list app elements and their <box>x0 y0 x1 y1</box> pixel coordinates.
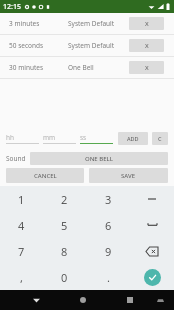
staticText: C <box>158 135 162 142</box>
button[interactable]: Dash <box>130 186 174 212</box>
button[interactable]: X <box>129 61 164 74</box>
staticText: 2 <box>61 192 68 207</box>
button[interactable]: 7 <box>0 238 43 264</box>
button[interactable]: SAVE <box>89 168 168 183</box>
staticText: 50 seconds <box>9 41 44 50</box>
button[interactable]: ADD <box>118 132 148 145</box>
button[interactable]: Back <box>25 290 47 310</box>
staticText: ADD <box>127 135 139 142</box>
button[interactable]: 4 <box>0 212 43 238</box>
staticText: 30 minutes <box>9 63 44 72</box>
staticText: , <box>20 270 23 285</box>
button[interactable]: Recent apps <box>119 290 141 310</box>
button[interactable]: 6 <box>86 212 130 238</box>
staticText: 8 <box>61 244 68 259</box>
staticText: X <box>145 64 149 72</box>
button[interactable]: CANCEL <box>6 168 84 183</box>
button[interactable]: 8 <box>43 238 86 264</box>
staticText: 3 minutes <box>9 19 40 28</box>
button[interactable]: 5 <box>43 212 86 238</box>
button[interactable]: Done <box>130 264 174 290</box>
button[interactable]: 3 minutes <box>0 13 174 34</box>
staticText: 5 <box>61 218 68 233</box>
staticText: ONE BELL <box>85 155 113 163</box>
button[interactable]: ONE BELL <box>30 152 168 165</box>
staticText: CANCEL <box>34 172 57 180</box>
staticText: mm <box>43 133 56 142</box>
staticText: 12:15 <box>3 2 21 12</box>
staticText: 3 <box>105 192 112 207</box>
button[interactable]: Backspace <box>130 238 174 264</box>
staticText: 6 <box>105 218 112 233</box>
staticText: ss <box>80 133 87 142</box>
button[interactable]: mm <box>43 132 76 144</box>
button[interactable]: 2 <box>43 186 86 212</box>
button[interactable]: 9 <box>86 238 130 264</box>
staticText: System Default <box>68 41 115 50</box>
button[interactable]: hh <box>6 132 39 144</box>
button[interactable]: 0 <box>43 264 86 290</box>
staticText: hh <box>6 133 15 142</box>
button[interactable]: ss <box>80 132 113 144</box>
staticText: 7 <box>18 244 25 259</box>
button[interactable]: 50 seconds <box>0 35 174 56</box>
button[interactable]: C <box>152 132 168 145</box>
staticText: 0 <box>61 270 68 285</box>
staticText: SAVE <box>121 172 136 180</box>
staticText: . <box>107 270 110 285</box>
button[interactable]: Keyboard <box>151 291 169 309</box>
staticText: X <box>145 42 149 50</box>
staticText: System Default <box>68 19 115 28</box>
button[interactable]: . <box>86 264 130 290</box>
staticText: One Bell <box>68 63 94 72</box>
button[interactable]: 30 minutes <box>0 57 174 78</box>
button[interactable]: 1 <box>0 186 43 212</box>
staticText: Sound <box>6 154 26 163</box>
button[interactable]: Space <box>130 212 174 238</box>
staticText: X <box>145 20 149 28</box>
button[interactable]: Home <box>72 290 94 310</box>
staticText: 1 <box>18 192 25 207</box>
button[interactable]: X <box>129 39 164 52</box>
button[interactable]: , <box>0 264 43 290</box>
button[interactable]: 3 <box>86 186 130 212</box>
staticText: 4 <box>18 218 25 233</box>
button[interactable]: X <box>129 17 164 30</box>
staticText: 9 <box>105 244 112 259</box>
